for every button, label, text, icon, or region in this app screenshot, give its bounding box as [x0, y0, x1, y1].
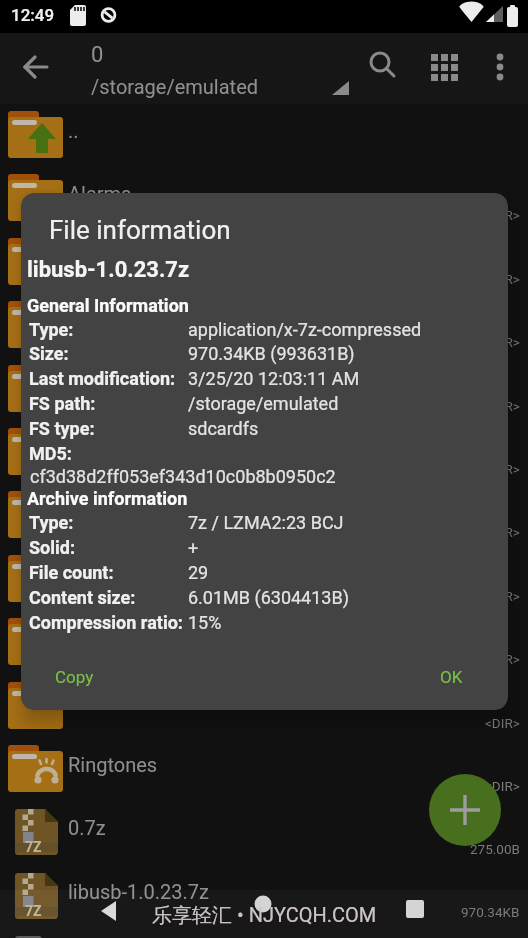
button[interactable]	[478, 42, 522, 86]
staticText: MD5:	[29, 443, 72, 464]
staticText: Documents	[68, 373, 171, 396]
staticText: <DIR>	[485, 334, 520, 350]
button[interactable]	[0, 675, 528, 738]
staticText: File count:	[29, 562, 114, 583]
staticText: File information	[49, 215, 231, 245]
staticText: <DIR>	[485, 398, 520, 414]
button[interactable]	[424, 44, 468, 88]
staticText: /storage/emulated	[188, 393, 339, 414]
button[interactable]	[0, 611, 528, 674]
staticText: libusb-1.0.23.7z	[68, 880, 210, 903]
staticText: cf3d38d2ff053ef343d10c0b8b0950c2	[30, 466, 336, 487]
button[interactable]	[393, 892, 437, 936]
staticText: 7Z	[25, 839, 42, 855]
staticText: 7z / LZMA2:23 BCJ	[188, 512, 344, 533]
staticText: FS path:	[29, 393, 96, 414]
staticText: <DIR>	[485, 778, 520, 794]
staticText: Alarms	[68, 182, 132, 205]
staticText: Movies	[68, 499, 133, 522]
staticText: 29	[188, 562, 209, 583]
staticText: General Information	[27, 295, 189, 316]
staticText: <DIR>	[485, 524, 520, 540]
button[interactable]	[429, 774, 501, 846]
staticText: libusb-1.0.23.7z	[27, 257, 190, 283]
button[interactable]	[0, 865, 528, 928]
button[interactable]	[0, 548, 528, 611]
button[interactable]: OK	[411, 655, 491, 699]
staticText: ..	[68, 119, 79, 142]
button[interactable]	[88, 892, 132, 936]
staticText: <DIR>	[485, 651, 520, 667]
staticText: Content size:	[29, 587, 136, 608]
staticText: <DIR>	[485, 588, 520, 604]
staticText: Notifications	[68, 626, 182, 649]
button[interactable]	[0, 738, 528, 801]
staticText: Compression ratio:	[29, 612, 183, 633]
staticText: application/x-7z-compressed	[188, 319, 422, 340]
staticText: 0	[91, 42, 104, 68]
staticText: Download	[68, 436, 158, 459]
staticText: <DIR>	[485, 271, 520, 287]
staticText: 15%	[188, 612, 222, 633]
staticText: 6.01MB (6304413B)	[188, 587, 349, 608]
staticText: Size:	[29, 343, 69, 364]
staticText: Solid:	[29, 537, 76, 558]
staticText: 7Z	[25, 903, 42, 919]
button[interactable]	[0, 167, 528, 230]
staticText: 275.00B	[470, 841, 520, 857]
button[interactable]	[0, 928, 528, 938]
button[interactable]	[0, 231, 528, 294]
button[interactable]	[0, 484, 528, 547]
staticText: OK	[440, 667, 463, 687]
staticText: 3/25/20 12:03:11 AM	[188, 368, 360, 389]
staticText: Type:	[29, 319, 74, 340]
staticText: /storage/emulated	[91, 75, 259, 98]
staticText: 乐享轻汇 • NJYCQH.COM	[152, 903, 377, 928]
staticText: 970.34KB (993631B)	[188, 343, 355, 364]
staticText: Archive information	[27, 488, 188, 509]
staticText: Music	[68, 563, 123, 586]
button[interactable]: Copy	[34, 655, 114, 699]
staticText: Ringtones	[68, 753, 158, 776]
staticText: Type:	[29, 512, 74, 533]
staticText: sdcardfs	[188, 418, 259, 439]
staticText: <DIR>	[485, 461, 520, 477]
staticText: <DIR>	[485, 715, 520, 731]
staticText: Last modification:	[29, 368, 176, 389]
button[interactable]	[360, 42, 404, 86]
staticText: Audiobooks	[68, 246, 175, 269]
staticText: DCIM	[68, 309, 118, 332]
staticText: +	[188, 537, 199, 558]
button[interactable]	[0, 104, 528, 167]
staticText: <DIR>	[485, 207, 520, 223]
button[interactable]	[88, 73, 354, 101]
button[interactable]	[0, 294, 528, 357]
staticText: 970.34KB	[461, 904, 520, 920]
staticText: 12:49	[11, 5, 55, 25]
button[interactable]	[0, 801, 528, 864]
staticText: FS type:	[29, 418, 95, 439]
button[interactable]	[241, 890, 285, 934]
staticText: 0.7z	[68, 816, 106, 839]
staticText: Copy	[55, 667, 94, 687]
button[interactable]	[0, 358, 528, 421]
button[interactable]	[14, 45, 60, 91]
button[interactable]	[0, 421, 528, 484]
staticText: Pictures	[68, 690, 142, 713]
